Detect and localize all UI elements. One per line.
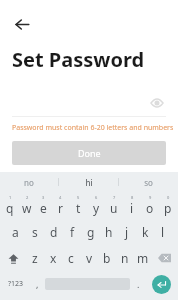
button[interactable]: Show password xyxy=(148,94,166,112)
staticText: p xyxy=(164,200,172,216)
button[interactable]: ?123 xyxy=(2,271,29,297)
staticText: l xyxy=(161,224,165,240)
staticText: a xyxy=(12,224,19,240)
staticText: t xyxy=(76,200,81,216)
button[interactable]: Shift xyxy=(1,245,26,271)
staticText: v xyxy=(86,250,93,266)
staticText: so xyxy=(144,177,153,188)
button[interactable]: 4 xyxy=(52,192,69,219)
button[interactable]: 1 xyxy=(1,192,18,219)
staticText: . xyxy=(137,278,140,290)
button[interactable]: 8 xyxy=(123,192,141,219)
button[interactable]: 3 xyxy=(35,192,52,219)
staticText: q xyxy=(6,200,14,216)
button[interactable]: Backspace xyxy=(152,245,177,271)
button[interactable]: Back xyxy=(8,10,36,38)
staticText: Done xyxy=(78,147,101,159)
staticText: 3 xyxy=(42,195,45,200)
button[interactable]: 7 xyxy=(105,192,123,219)
staticText: ?123 xyxy=(8,279,24,289)
staticText: Set Password xyxy=(12,46,145,73)
button[interactable]: z xyxy=(26,245,44,271)
button[interactable]: b xyxy=(98,245,116,271)
staticText: Password must contain 6-20 letters and n… xyxy=(12,123,174,133)
button[interactable]: so xyxy=(119,172,178,192)
button[interactable]: j xyxy=(118,219,136,245)
staticText: r xyxy=(58,200,63,216)
staticText: e xyxy=(40,200,47,216)
button[interactable]: m xyxy=(134,245,152,271)
staticText: h xyxy=(105,224,113,240)
staticText: b xyxy=(103,250,111,266)
button[interactable]: d xyxy=(44,219,63,245)
staticText: 8 xyxy=(131,195,134,200)
staticText: 2 xyxy=(26,195,29,200)
staticText: hi xyxy=(85,177,93,188)
staticText: k xyxy=(142,224,149,240)
staticText: s xyxy=(32,224,38,240)
button[interactable]: Done xyxy=(12,141,166,165)
button[interactable]: n xyxy=(116,245,134,271)
staticText: 7 xyxy=(113,195,116,200)
staticText: n xyxy=(121,250,129,266)
staticText: i xyxy=(130,200,134,216)
staticText: 5 xyxy=(77,195,80,200)
staticText: c xyxy=(68,250,74,266)
staticText: , xyxy=(36,278,39,290)
staticText: 0 xyxy=(167,195,170,200)
button[interactable]: 6 xyxy=(87,192,105,219)
button[interactable]: . xyxy=(130,271,146,297)
staticText: 1 xyxy=(9,195,12,200)
staticText: d xyxy=(50,224,58,240)
staticText: f xyxy=(70,224,75,240)
button[interactable]: f xyxy=(63,219,82,245)
staticText: w xyxy=(22,200,32,216)
button[interactable]: Enter xyxy=(152,275,171,294)
staticText: o xyxy=(146,200,154,216)
button[interactable]: l xyxy=(154,219,172,245)
staticText: y xyxy=(93,200,100,216)
button[interactable]: , xyxy=(29,271,45,297)
staticText: 6 xyxy=(95,195,98,200)
staticText: 9 xyxy=(149,195,152,200)
button[interactable]: 5 xyxy=(69,192,87,219)
button[interactable]: v xyxy=(80,245,98,271)
button[interactable]: g xyxy=(82,219,100,245)
button[interactable]: s xyxy=(25,219,44,245)
staticText: x xyxy=(50,250,57,266)
button[interactable]: x xyxy=(44,245,62,271)
staticText: z xyxy=(32,250,38,266)
button[interactable]: h xyxy=(100,219,118,245)
button[interactable]: 0 xyxy=(159,192,177,219)
staticText: g xyxy=(87,224,95,240)
staticText: m xyxy=(137,250,149,266)
staticText: j xyxy=(125,224,129,240)
button[interactable]: k xyxy=(136,219,154,245)
button[interactable]: no xyxy=(0,172,58,192)
button[interactable]: 9 xyxy=(141,192,159,219)
button[interactable]: a xyxy=(6,219,25,245)
staticText: u xyxy=(110,200,118,216)
staticText: no xyxy=(24,177,34,188)
button[interactable]: hi xyxy=(59,172,118,192)
staticText: 4 xyxy=(59,195,62,200)
button[interactable]: c xyxy=(62,245,80,271)
button[interactable]: 2 xyxy=(18,192,35,219)
